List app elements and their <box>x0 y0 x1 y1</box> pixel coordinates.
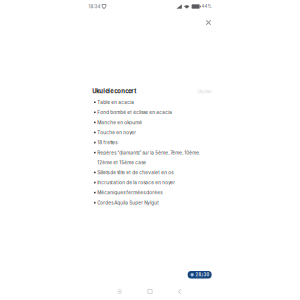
staticText: Sillets de tête et de chevalet en os <box>97 170 173 175</box>
staticText: Mécaniques fermées dorées <box>97 190 162 195</box>
button[interactable]: Recent apps <box>112 286 128 296</box>
staticText: Table en acacia <box>97 100 134 105</box>
button[interactable]: 28/30 <box>188 271 212 278</box>
staticText: 28/30 <box>195 272 209 277</box>
staticText: Repères “diamants” sur la 5ème, 7ème, 10… <box>97 150 200 165</box>
staticText: Cordes Aquila Super Nylgut <box>97 200 159 206</box>
staticText: Manche en okoumé <box>97 120 142 125</box>
staticText: Incrustation de la rosace en noyer <box>97 180 175 185</box>
button[interactable]: Home <box>142 286 158 296</box>
staticText: Ukulélé concert <box>92 87 136 95</box>
staticText: 44% <box>201 4 211 9</box>
button[interactable]: Close <box>202 16 215 29</box>
staticText: Touche en noyer <box>97 130 136 135</box>
staticText: 18 frettes <box>97 140 117 145</box>
staticText: Ukulele <box>197 89 211 94</box>
staticText: 18:34 <box>88 4 100 9</box>
staticText: Fond bombé et éclisse en acacia <box>97 110 172 115</box>
button[interactable]: Back <box>172 286 188 296</box>
